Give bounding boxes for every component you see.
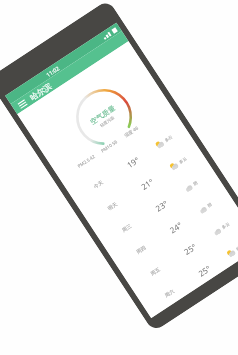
staticText: 周六 <box>164 288 175 298</box>
staticText: 晴 <box>235 245 238 252</box>
button[interactable]: Menu <box>11 93 34 114</box>
staticText: 多云 <box>164 134 173 143</box>
staticText: 阴 <box>192 180 198 186</box>
staticText: 今天 <box>92 179 104 190</box>
staticText: 24° <box>167 219 184 235</box>
button[interactable]: 周三 <box>95 160 221 255</box>
button[interactable]: 明天 <box>81 138 206 233</box>
button[interactable]: 周四 <box>109 181 235 276</box>
button[interactable]: 周五 <box>124 203 238 298</box>
button[interactable]: 今天 <box>67 116 192 211</box>
staticText: 周四 <box>135 244 147 255</box>
staticText: 21° <box>139 175 156 192</box>
staticText: PM10 56 <box>100 138 119 153</box>
staticText: 25° <box>182 241 199 257</box>
staticText: 湿度 46 <box>123 124 140 138</box>
staticText: 周五 <box>149 266 161 276</box>
button[interactable]: Air quality <box>65 78 143 156</box>
staticText: 19° <box>125 154 141 170</box>
staticText: 轻度污染 <box>99 115 115 128</box>
staticText: 明天 <box>106 201 118 211</box>
staticText: 多云 <box>221 221 230 230</box>
staticText: 空气质量 <box>88 103 117 126</box>
staticText: PM2.5 42 <box>76 153 96 169</box>
staticText: 11:02 <box>45 64 61 78</box>
staticText: 阴 <box>207 202 213 208</box>
staticText: 23° <box>153 197 170 213</box>
staticText: 周三 <box>121 222 132 233</box>
staticText: 25° <box>196 262 213 279</box>
staticText: 哈尔滨 <box>28 81 53 102</box>
button[interactable]: 周六 <box>138 225 238 320</box>
staticText: 多云 <box>178 156 187 165</box>
